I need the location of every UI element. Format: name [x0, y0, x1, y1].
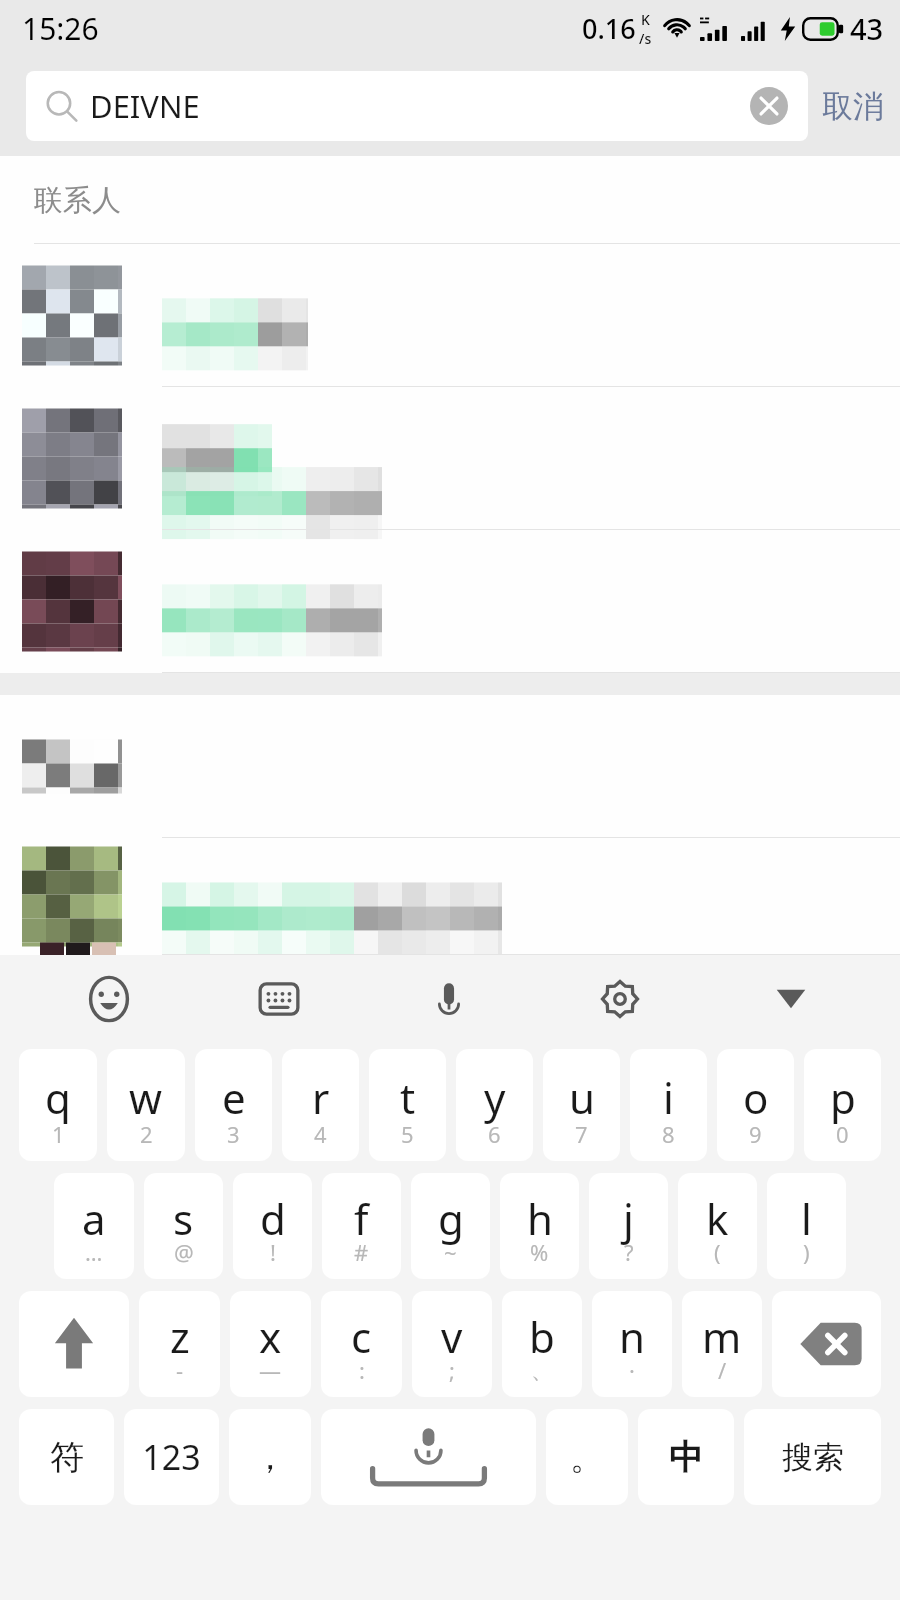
button[interactable]: o — [717, 1049, 794, 1161]
staticText: 0.16 — [582, 10, 636, 47]
staticText: f — [354, 1190, 369, 1247]
staticText: t — [400, 1069, 416, 1126]
button[interactable] — [0, 530, 900, 673]
staticText: j — [623, 1190, 634, 1247]
staticText: 搜索 — [782, 1438, 844, 1477]
staticText: w — [129, 1069, 163, 1126]
button[interactable]: j — [589, 1173, 668, 1279]
button[interactable]: m — [682, 1291, 762, 1397]
staticText: v — [441, 1308, 463, 1365]
button[interactable]: 搜索 — [744, 1409, 881, 1505]
button[interactable]: k — [678, 1173, 757, 1279]
staticText: x — [259, 1308, 282, 1365]
button[interactable]: x — [230, 1291, 311, 1397]
staticText: - — [176, 1355, 184, 1385]
button[interactable]: v — [412, 1291, 492, 1397]
button[interactable]: g — [411, 1173, 490, 1279]
staticText: % — [530, 1237, 549, 1267]
staticText: a — [82, 1190, 106, 1247]
button[interactable]: a — [54, 1173, 134, 1279]
staticText: ) — [803, 1237, 810, 1267]
staticText: @ — [174, 1237, 194, 1267]
staticText: # — [354, 1237, 369, 1267]
staticText: 符 — [50, 1436, 84, 1479]
staticText: … — [85, 1237, 103, 1267]
staticText: 7 — [575, 1119, 588, 1149]
button[interactable] — [0, 387, 900, 530]
button[interactable]: n — [592, 1291, 672, 1397]
button[interactable]: ， — [229, 1409, 311, 1505]
staticText: n — [619, 1308, 645, 1365]
button[interactable]: 123 — [124, 1409, 219, 1505]
button[interactable]: t — [369, 1049, 446, 1161]
staticText: ~ — [444, 1237, 457, 1267]
button[interactable]: Space — [321, 1409, 536, 1505]
staticText: 联系人 — [34, 182, 121, 219]
button[interactable]: f — [322, 1173, 401, 1279]
button[interactable]: 。 — [546, 1409, 628, 1505]
button[interactable]: Voice input — [418, 968, 480, 1030]
staticText: k — [706, 1190, 729, 1247]
staticText: 0 — [836, 1119, 849, 1149]
button[interactable]: b — [502, 1291, 582, 1397]
staticText: ， — [253, 1436, 287, 1479]
button[interactable]: Keyboard layout — [248, 968, 310, 1030]
button[interactable]: r — [282, 1049, 359, 1161]
staticText: 9 — [749, 1119, 762, 1149]
staticText: d — [260, 1190, 286, 1247]
staticText: 2 — [140, 1119, 153, 1149]
staticText: ? — [624, 1237, 634, 1267]
button[interactable]: 取消 — [822, 87, 884, 126]
button[interactable]: w — [107, 1049, 185, 1161]
button[interactable]: z — [139, 1291, 220, 1397]
button[interactable]: p — [804, 1049, 881, 1161]
button[interactable] — [0, 838, 900, 955]
button[interactable]: s — [144, 1173, 223, 1279]
staticText: y — [484, 1069, 506, 1126]
button[interactable]: d — [233, 1173, 312, 1279]
button[interactable]: Settings — [589, 968, 651, 1030]
staticText: K — [641, 10, 650, 29]
staticText: g — [438, 1190, 464, 1247]
button[interactable]: Emoji — [78, 968, 140, 1030]
staticText: 43 — [850, 9, 884, 48]
staticText: 5 — [401, 1119, 414, 1149]
staticText: /s — [639, 29, 652, 48]
staticText: s — [173, 1190, 194, 1247]
button[interactable]: y — [456, 1049, 533, 1161]
button[interactable]: i — [630, 1049, 707, 1161]
staticText: l — [801, 1190, 812, 1247]
staticText: 8 — [662, 1119, 675, 1149]
staticText: c — [351, 1308, 372, 1365]
button[interactable]: h — [500, 1173, 579, 1279]
staticText: 15:26 — [22, 8, 99, 49]
staticText: · — [629, 1355, 635, 1385]
button[interactable]: c — [321, 1291, 402, 1397]
button[interactable]: Hide keyboard — [760, 968, 822, 1030]
button[interactable]: DEIVNE — [26, 71, 808, 141]
staticText: m — [702, 1308, 742, 1365]
staticText: : — [359, 1355, 365, 1385]
button[interactable]: u — [543, 1049, 620, 1161]
staticText: q — [45, 1069, 71, 1126]
button[interactable] — [0, 695, 900, 838]
staticText: ( — [714, 1237, 721, 1267]
button[interactable] — [0, 244, 900, 387]
button[interactable]: Backspace — [772, 1291, 881, 1397]
button[interactable]: Clear search — [750, 87, 788, 125]
button[interactable]: 中 — [638, 1409, 734, 1505]
button[interactable]: l — [767, 1173, 846, 1279]
staticText: ! — [270, 1237, 276, 1267]
staticText: r — [312, 1069, 330, 1126]
staticText: 3 — [227, 1119, 240, 1149]
staticText: / — [718, 1355, 727, 1385]
staticText: o — [743, 1069, 769, 1126]
button[interactable]: q — [19, 1049, 97, 1161]
staticText: — — [259, 1355, 282, 1385]
button[interactable]: Shift — [19, 1291, 129, 1397]
button[interactable]: 符 — [19, 1409, 114, 1505]
staticText: h — [527, 1190, 553, 1247]
staticText: ; — [449, 1355, 455, 1385]
button[interactable]: e — [195, 1049, 272, 1161]
staticText: 6 — [488, 1119, 501, 1149]
